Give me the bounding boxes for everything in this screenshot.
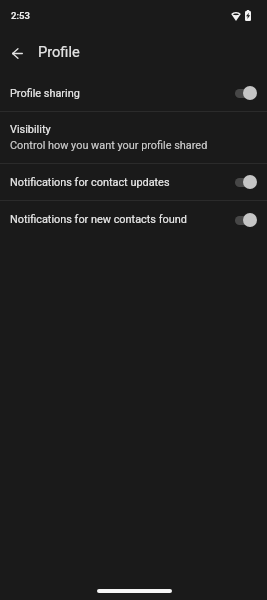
staticText: Control how you want your profile shared [10,139,208,152]
button[interactable]: Back [5,41,30,66]
button[interactable]: Visibility [0,112,267,163]
button[interactable]: Profile sharing [0,75,267,111]
button[interactable]: Notifications for contact updates [0,164,267,200]
other: On [235,213,256,227]
staticText: Notifications for contact updates [10,176,235,189]
staticText: Notifications for new contacts found [10,213,235,226]
other: On [235,86,256,100]
button[interactable]: Notifications for new contacts found [0,201,267,238]
staticText: Profile [38,43,80,60]
other: On [235,175,256,189]
staticText: 2:53 [11,10,30,21]
staticText: Visibility [10,123,51,136]
staticText: Profile sharing [10,87,235,100]
